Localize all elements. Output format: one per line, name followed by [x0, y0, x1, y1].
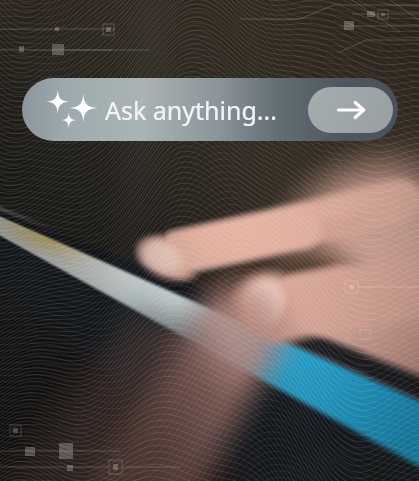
button[interactable]: Submit — [308, 87, 393, 133]
button[interactable]: Ask anything... — [22, 78, 398, 141]
staticText: Ask anything... — [105, 93, 277, 127]
